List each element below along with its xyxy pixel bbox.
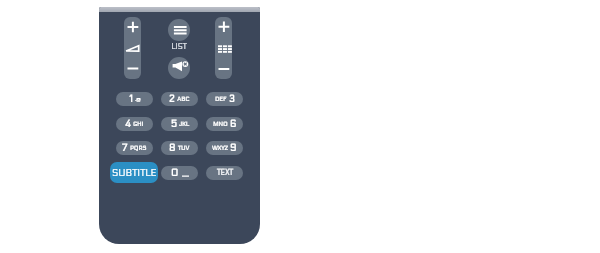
button[interactable]: SUBTITLE (110, 162, 158, 183)
staticText: 9 (230, 143, 237, 154)
button[interactable]: 5 (161, 117, 198, 131)
button[interactable]: List (168, 19, 190, 41)
staticText: 4 (125, 119, 131, 130)
staticText: PQRS (130, 145, 147, 152)
button[interactable]: 7 (116, 141, 153, 155)
staticText: LIST (164, 42, 194, 51)
staticText: TUV (178, 145, 190, 152)
button[interactable]: Volume up and down (124, 17, 141, 79)
staticText: GHI (133, 121, 144, 128)
button[interactable]: WXYZ (206, 141, 243, 155)
button[interactable]: Mute (168, 57, 190, 79)
staticText: WXYZ (212, 145, 228, 152)
button[interactable]: DEF (206, 92, 243, 106)
staticText: 0 (171, 168, 179, 179)
staticText: 1 (129, 94, 133, 105)
button[interactable]: 1 (116, 92, 153, 106)
staticText: TEXT (217, 169, 233, 177)
staticText: .@ (135, 96, 141, 103)
button[interactable]: MNO (206, 117, 243, 131)
staticText: DEF (215, 96, 227, 103)
staticText: 6 (230, 119, 237, 130)
button[interactable]: 2 (161, 92, 198, 106)
button[interactable]: 0 (161, 166, 198, 180)
button[interactable]: 8 (161, 141, 198, 155)
staticText: 5 (171, 119, 177, 130)
button[interactable]: Channel up and down (215, 17, 232, 79)
staticText: 2 (169, 94, 175, 105)
staticText: 3 (229, 94, 235, 105)
staticText: JKL (179, 121, 189, 128)
staticText: 8 (169, 143, 176, 154)
staticText: ABC (177, 96, 190, 103)
staticText: SUBTITLE (112, 167, 157, 179)
staticText: MNO (213, 121, 228, 128)
staticText: 7 (122, 143, 128, 154)
button[interactable]: 4 (116, 117, 153, 131)
button[interactable]: TEXT (206, 166, 243, 180)
